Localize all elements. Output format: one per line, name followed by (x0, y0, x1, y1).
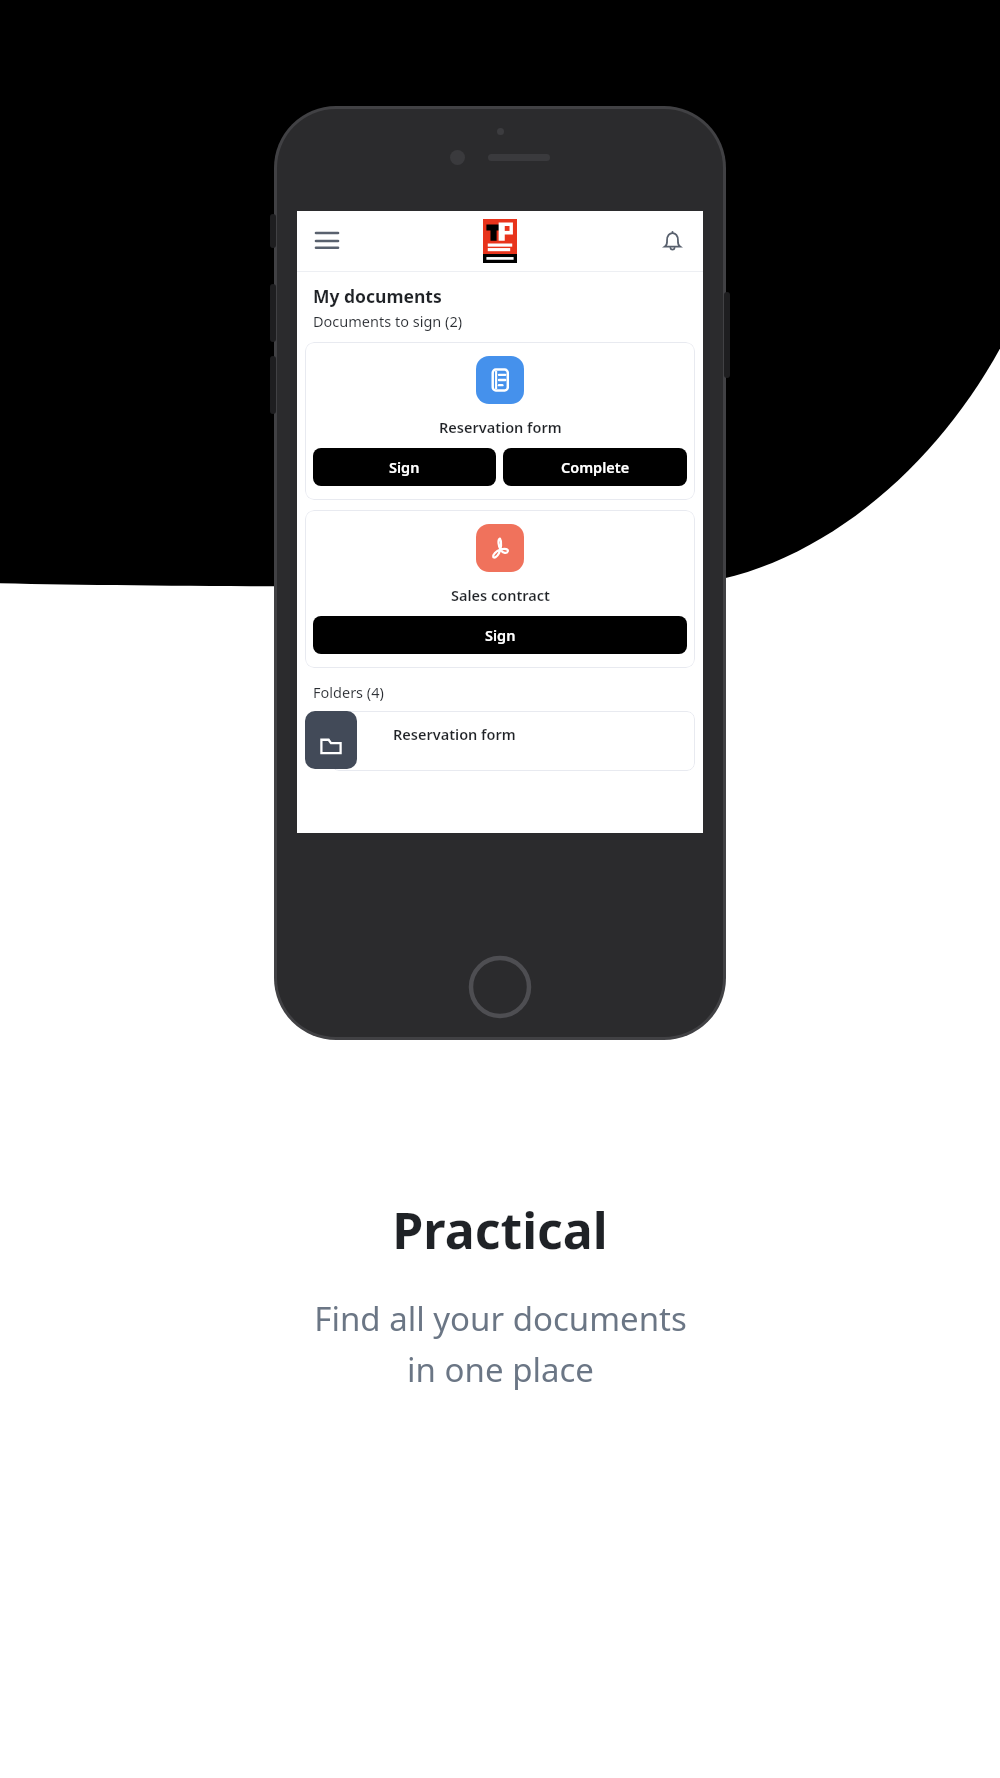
button[interactable]: Menu (307, 221, 347, 261)
button[interactable]: Complete (503, 448, 687, 486)
button[interactable]: Sales contract (305, 510, 695, 668)
staticText: Find all your documents (314, 1296, 687, 1341)
staticText: Sign (389, 457, 420, 477)
staticText: Folders (4) (313, 682, 384, 702)
staticText: My documents (313, 284, 442, 308)
staticText: Sign (485, 625, 516, 645)
button[interactable]: Notifications (653, 222, 691, 260)
staticText: Reservation form (393, 724, 516, 744)
staticText: Sales contract (451, 585, 550, 605)
button[interactable]: Sign (313, 448, 496, 486)
staticText: Documents to sign (2) (313, 311, 463, 331)
staticText: Practical (392, 1196, 608, 1264)
staticText: Complete (561, 457, 630, 477)
button[interactable]: Reservation form (305, 342, 695, 500)
button[interactable]: Sign (313, 616, 687, 654)
staticText: in one place (407, 1347, 594, 1392)
staticText: Reservation form (439, 417, 562, 437)
button[interactable]: Reservation form (305, 711, 695, 771)
